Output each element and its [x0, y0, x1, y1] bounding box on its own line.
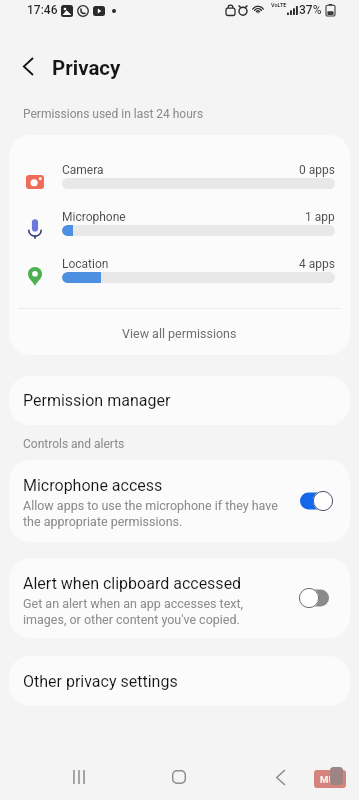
staticText: 1 app	[305, 210, 335, 224]
staticText: 17:46	[27, 3, 58, 17]
button[interactable]: Microphone	[9, 205, 350, 252]
staticText: 37%	[299, 3, 322, 17]
button[interactable]: Back	[256, 753, 304, 800]
staticText: Alert when clipboard accessed	[23, 574, 242, 593]
button[interactable]: Navigate up	[12, 50, 44, 82]
staticText: View all permissions	[122, 326, 237, 341]
staticText: Permission manager	[23, 391, 171, 410]
button[interactable]: Permission manager	[9, 376, 350, 425]
button[interactable]: Microphone access	[9, 460, 350, 542]
button[interactable]: Alert when clipboard accessed	[9, 558, 350, 638]
staticText: Microphone access	[23, 476, 163, 495]
button[interactable]: View all permissions	[9, 311, 350, 355]
staticText: VoLTE	[271, 2, 287, 8]
staticText: Controls and alerts	[23, 437, 125, 451]
button[interactable]: Other privacy settings	[9, 656, 350, 706]
staticText: Get an alert when an app accesses text, …	[23, 596, 244, 627]
staticText: 4 apps	[299, 257, 335, 271]
staticText: Location	[62, 257, 109, 271]
staticText: 0 apps	[299, 163, 335, 177]
staticText: Camera	[62, 163, 104, 177]
staticText: Allow apps to use the microphone if they…	[23, 498, 278, 529]
button[interactable]: Switch off	[281, 581, 329, 615]
button[interactable]: MUD	[314, 770, 346, 788]
staticText: Microphone	[62, 210, 126, 224]
button[interactable]: Recent apps	[55, 753, 103, 800]
staticText: Permissions used in last 24 hours	[23, 107, 204, 121]
button[interactable]: Home	[155, 753, 203, 800]
staticText: Privacy	[52, 56, 121, 80]
button[interactable]: Switch on	[281, 484, 329, 518]
button[interactable]: Camera	[9, 158, 350, 205]
staticText: Other privacy settings	[23, 672, 178, 691]
button[interactable]: Location	[9, 252, 350, 299]
staticText: MUD	[320, 774, 341, 785]
